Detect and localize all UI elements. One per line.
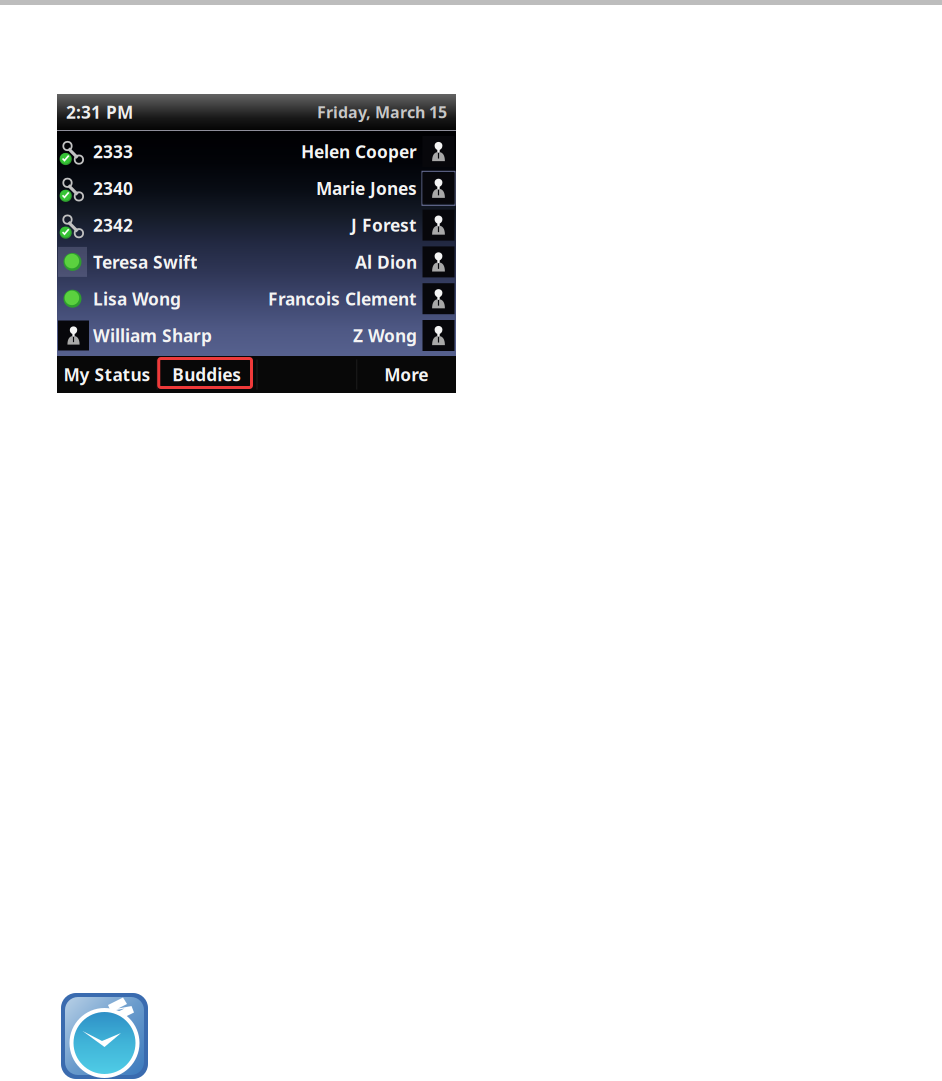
staticText: Z Wong xyxy=(353,324,417,347)
staticText: More xyxy=(384,363,428,386)
staticText: J Forest xyxy=(351,214,417,237)
staticText: Marie Jones xyxy=(316,177,417,200)
button[interactable]: William Sharp xyxy=(57,317,456,354)
staticText: 2:31 PM xyxy=(66,100,133,123)
staticText: Francois Clement xyxy=(268,287,417,310)
staticText: William Sharp xyxy=(93,324,212,347)
button[interactable]: Lisa Wong xyxy=(57,280,456,317)
staticText: Friday, March 15 xyxy=(317,101,447,123)
button[interactable]: Teresa Swift xyxy=(57,243,456,280)
staticText: Teresa Swift xyxy=(93,250,198,273)
staticText: Buddies xyxy=(172,363,241,386)
button[interactable]: My Status xyxy=(57,356,157,393)
staticText: 2342 xyxy=(93,214,133,237)
button[interactable]: 2333 xyxy=(57,133,456,170)
staticText: Lisa Wong xyxy=(93,287,181,310)
button[interactable]: 2342 xyxy=(57,207,456,243)
staticText: My Status xyxy=(63,363,150,386)
button[interactable]: More xyxy=(356,356,456,393)
staticText: 2333 xyxy=(93,140,133,163)
button[interactable]: Buddies xyxy=(157,356,257,393)
staticText: Al Dion xyxy=(355,250,417,273)
button[interactable]: 2340 xyxy=(57,170,456,207)
staticText: 2340 xyxy=(93,177,133,200)
staticText: Helen Cooper xyxy=(301,140,417,163)
